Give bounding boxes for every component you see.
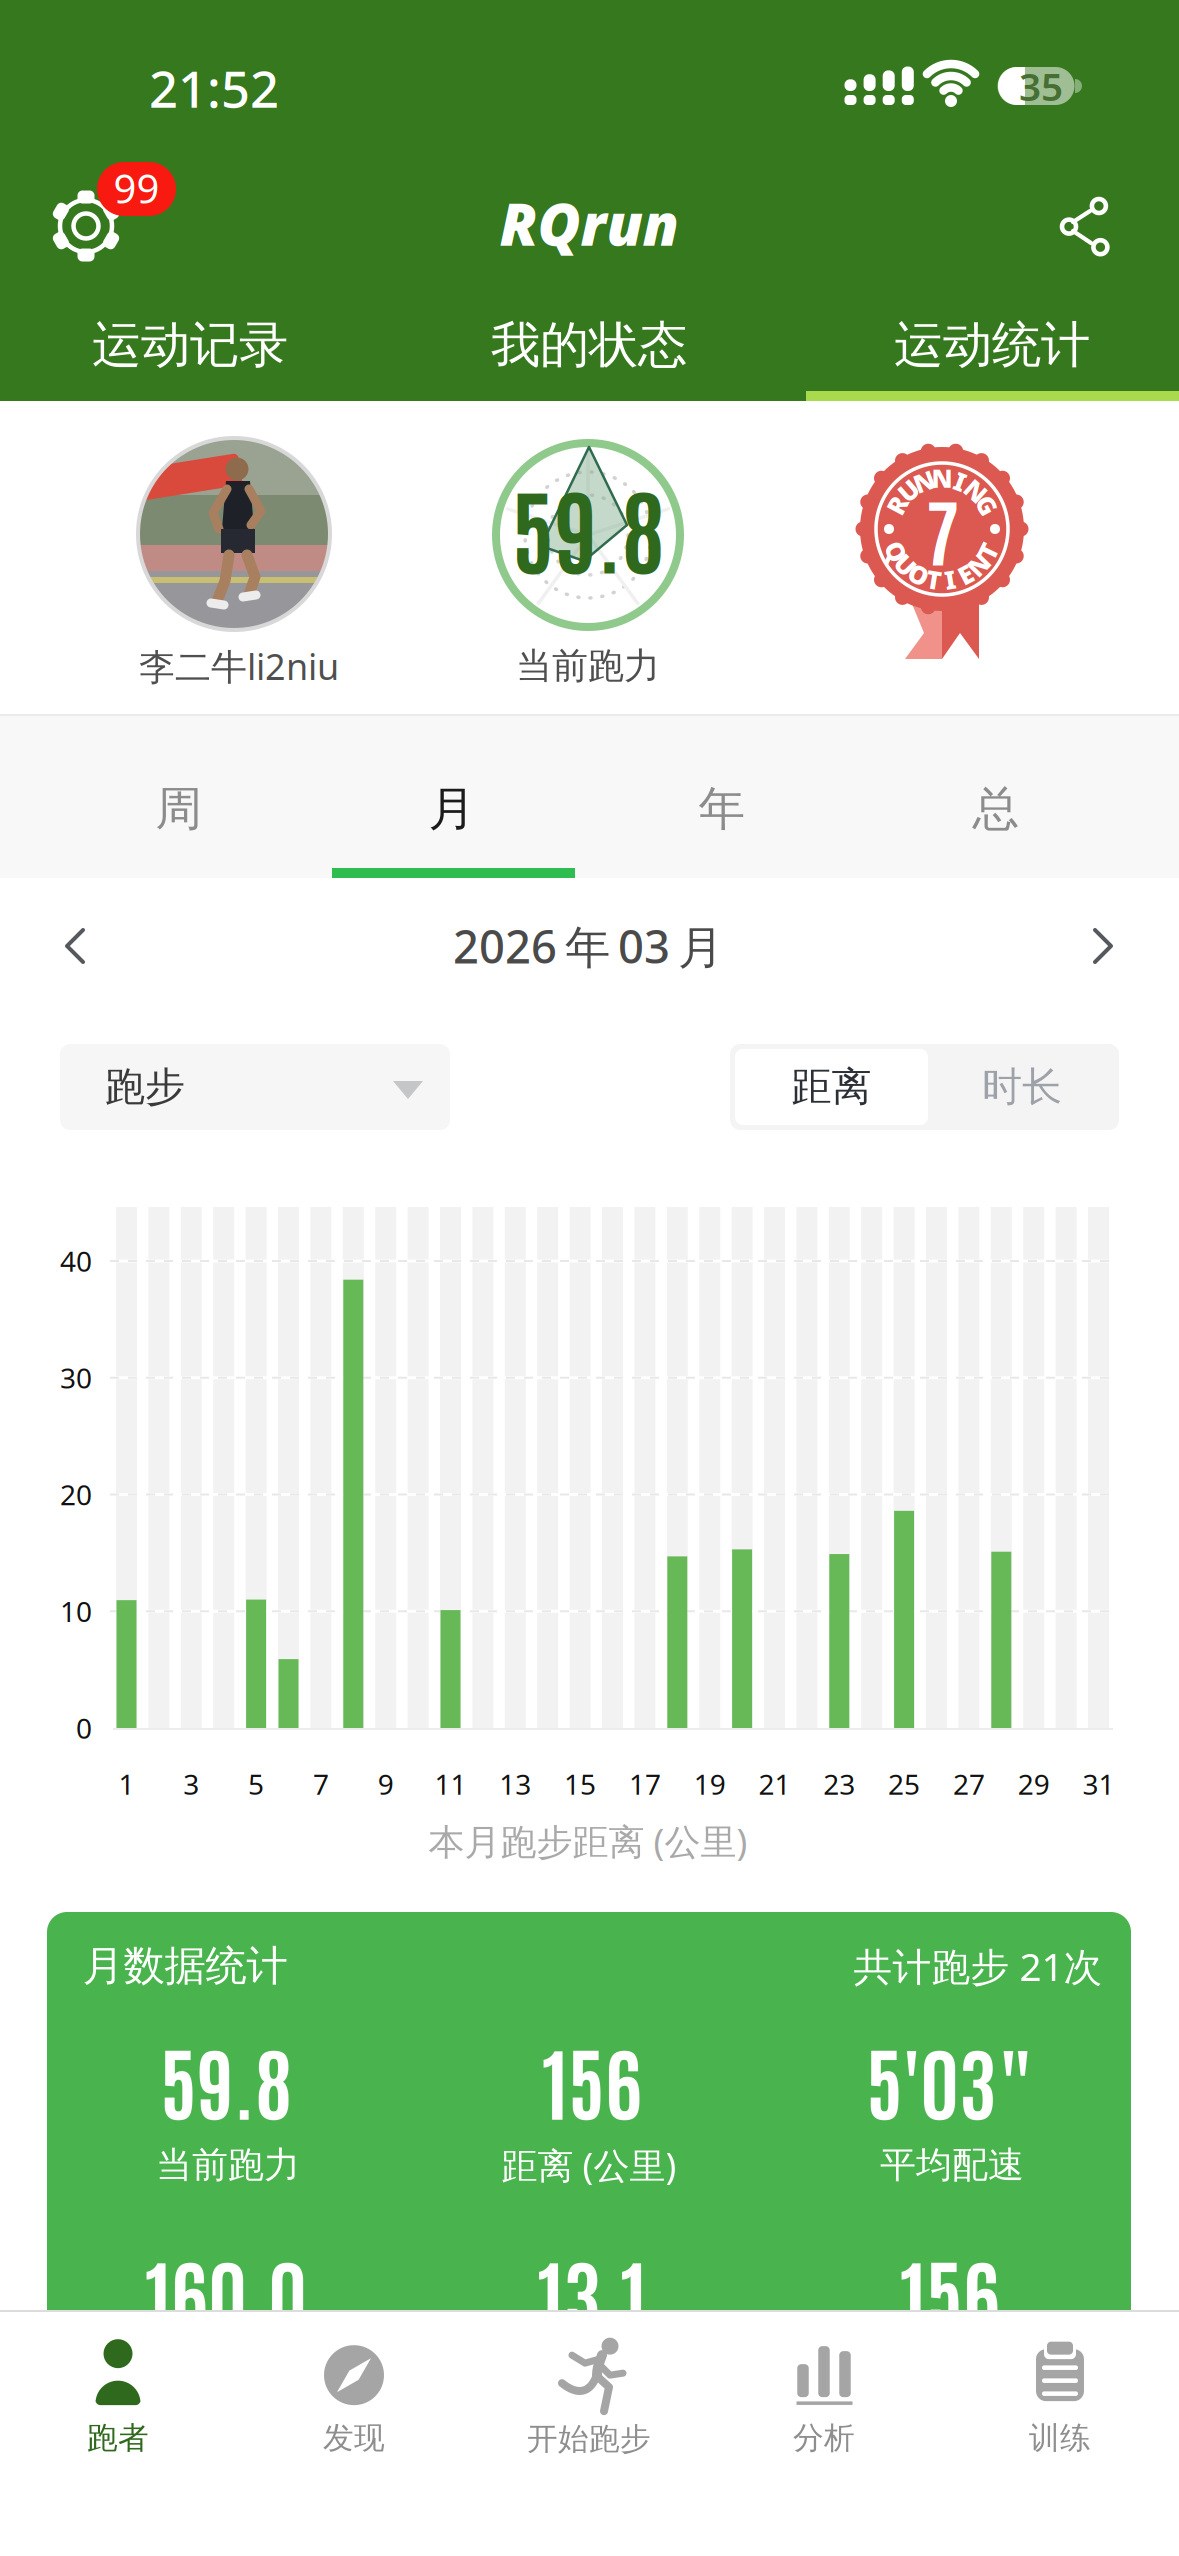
staticText: N [968,548,989,581]
staticText: U [896,548,915,581]
button[interactable]: 我的状态 [399,297,779,393]
staticText: 13.1 [537,2239,646,2343]
staticText: 距离 [791,1062,871,1111]
staticText: 156 [542,2027,642,2131]
staticText: 月数据统计 [82,1941,287,1991]
staticText: 平均配速 [880,2143,1024,2187]
staticText: 21 [758,1765,790,1803]
button[interactable]: 运动统计 [802,297,1179,393]
staticText: 99 [113,161,159,214]
staticText: 运动记录 [92,315,288,375]
staticText: 总 [972,780,1019,838]
staticText: RQrun [499,184,678,262]
staticText: 跑步 [105,1062,185,1111]
staticText: 跑者 [87,2419,149,2457]
staticText: 13 [499,1765,531,1803]
staticText: Q [886,534,906,568]
staticText: 发现 [323,2419,385,2457]
staticText: 2026 年 03 月 [453,916,723,976]
button[interactable]: 分析 [706,2321,941,2471]
staticText: O [908,557,928,591]
staticText: 周 [155,780,202,838]
staticText: 共计跑步 21次 [853,1940,1102,1992]
staticText: 31 [1082,1765,1114,1803]
staticText: 160.0 [145,2239,307,2343]
staticText: 20 [60,1476,92,1513]
staticText: 17 [629,1765,661,1803]
staticText: 11 [434,1765,466,1803]
staticText: 40 [60,1242,92,1280]
staticText: 1 [118,1765,134,1803]
staticText: I [955,464,966,498]
staticText: 5'03" [866,2027,1034,2131]
staticText: 25 [888,1765,920,1803]
staticText: 3 [183,1765,199,1803]
button[interactable]: Share [1062,199,1108,255]
staticText: 7 [313,1765,329,1803]
staticText: 当前跑力 [516,644,660,688]
staticText: I [945,562,956,596]
button[interactable]: 跑者 [0,2321,235,2471]
staticText: 21:52 [149,54,279,122]
staticText: 10 [60,1593,92,1630]
staticText: U [899,474,918,507]
staticText: N [914,464,935,498]
button[interactable]: 发现 [236,2321,471,2471]
staticText: 30 [60,1359,92,1396]
staticText: 23 [823,1765,855,1803]
button[interactable]: 开始跑步 [471,2319,706,2469]
staticText: 训练 [1029,2419,1091,2457]
staticText: T [980,534,995,568]
staticText: N [932,461,953,495]
staticText: 开始跑步 [527,2420,651,2458]
button[interactable]: 月 [332,739,572,879]
staticText: 李二牛li2niu [139,642,339,690]
staticText: 本月跑步距离 (公里) [428,1817,747,1865]
staticText: 运动统计 [894,315,1090,375]
button[interactable]: 总 [876,739,1116,879]
staticText: 27 [953,1765,985,1803]
button[interactable]: 周 [59,739,299,879]
staticText: 当前跑力 [156,2143,300,2187]
staticText: 0 [76,1709,92,1747]
staticText: 我的状态 [491,315,687,375]
button[interactable]: Settings [20,150,200,290]
button[interactable]: 距离 [735,1049,928,1125]
staticText: 15 [564,1765,596,1803]
staticText: 19 [694,1765,726,1803]
staticText: 35 [1019,60,1063,112]
staticText: 年 [698,780,745,838]
staticText: 5 [248,1765,264,1803]
staticText: 59.8 [160,2027,292,2131]
button[interactable]: 年 [602,739,842,879]
staticText: T [926,562,941,596]
staticText: 29 [1018,1765,1050,1803]
staticText: 时长 [982,1062,1062,1111]
button[interactable]: 跑步 [60,1044,450,1130]
staticText: 分析 [793,2419,855,2457]
button[interactable]: 运动记录 [0,297,380,393]
staticText: 156 [900,2239,1000,2343]
button[interactable]: 训练 [942,2321,1177,2471]
staticText: 7 [925,482,958,576]
button[interactable]: Previous month [36,906,116,986]
button[interactable]: Next month [1062,906,1142,986]
staticText: 59.8 [511,466,664,586]
button[interactable]: 时长 [932,1049,1112,1125]
staticText: 距离 (公里) [501,2141,676,2189]
staticText: E [958,557,972,591]
staticText: R [888,488,905,522]
staticText: 9 [378,1765,394,1803]
staticText: G [978,488,997,522]
staticText: N [965,474,986,508]
staticText: 月 [428,780,475,838]
